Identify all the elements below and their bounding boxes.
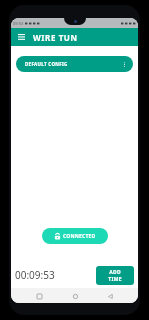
- other: More options: [121, 61, 128, 68]
- button[interactable]: ADD TIME: [96, 266, 134, 285]
- staticText: 00:09:53: [15, 268, 55, 282]
- staticText: ADD TIME: [108, 269, 122, 282]
- staticText: DEFAULT CONFIG: [25, 61, 68, 67]
- staticText: 09:53: [13, 21, 24, 26]
- button[interactable]: Open navigation menu: [16, 32, 27, 43]
- button[interactable]: Back: [103, 289, 117, 303]
- staticText: CONNECTED: [63, 233, 96, 240]
- button[interactable]: Recent apps: [32, 289, 46, 303]
- button[interactable]: DEFAULT CONFIG: [16, 56, 133, 72]
- button[interactable]: Home: [68, 289, 82, 303]
- staticText: WIRE TUN: [33, 32, 78, 43]
- button[interactable]: CONNECTED: [42, 228, 108, 244]
